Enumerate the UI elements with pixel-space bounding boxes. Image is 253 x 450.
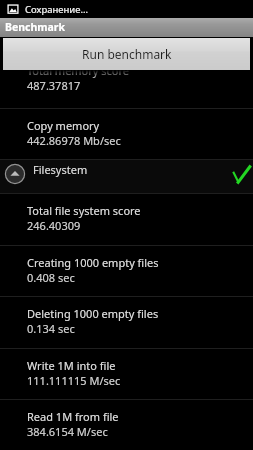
button[interactable]: Deleting 1000 empty files [0, 296, 253, 348]
staticText: 246.40309 [27, 218, 81, 233]
staticText: Filesystem [33, 162, 88, 177]
button[interactable]: Creating 1000 empty files [0, 245, 253, 296]
staticText: Run benchmark [82, 46, 172, 62]
staticText: 384.6154 M/sec [27, 424, 108, 436]
staticText: 487.37817 [27, 78, 81, 93]
staticText: Read 1M from file [27, 409, 119, 424]
button[interactable]: Read 1M from file [0, 399, 253, 436]
button[interactable]: Write 1M into file [0, 348, 253, 399]
staticText: Creating 1000 empty files [27, 255, 159, 270]
button[interactable]: Copy memory [0, 108, 253, 159]
other: Collapse Filesystem [4, 163, 26, 185]
button[interactable]: Run benchmark [3, 38, 250, 70]
staticText: 0.134 sec [27, 321, 75, 336]
button[interactable]: Total memory score [0, 70, 253, 108]
staticText: Total file system score [27, 203, 141, 218]
staticText: Benchmark [5, 20, 66, 34]
staticText: Copy memory [27, 118, 100, 133]
staticText: Deleting 1000 empty files [27, 306, 159, 321]
button[interactable]: Total file system score [0, 193, 253, 245]
staticText: Total memory score [27, 70, 130, 78]
button[interactable]: Collapse Filesystem [0, 159, 253, 193]
staticText: 0.408 sec [27, 270, 75, 285]
staticText: Сохранение... [25, 3, 89, 16]
staticText: Write 1M into file [27, 358, 116, 373]
staticText: 442.86978 Mb/sec [27, 133, 121, 148]
other: Completed [233, 166, 250, 183]
staticText: 111.111115 M/sec [27, 373, 121, 388]
